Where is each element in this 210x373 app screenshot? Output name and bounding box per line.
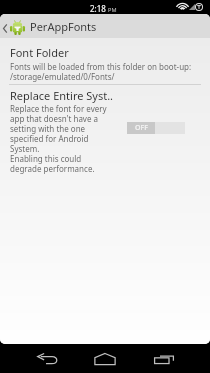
staticText: PM [108,6,117,14]
button[interactable]: Recent apps [134,344,194,373]
button[interactable]: Font Folder [0,38,210,84]
staticText: Fonts will be loaded from this folder on… [10,61,192,82]
staticText: PerAppFonts [30,19,97,34]
button[interactable]: Back [17,344,77,373]
button[interactable]: Navigate up [0,14,210,38]
button[interactable]: Home [75,344,135,373]
button[interactable]: Toggle off [127,122,185,134]
staticText: Replace Entire Syst.. [10,88,114,103]
staticText: Font Folder [10,45,69,60]
staticText: OFF [135,123,148,133]
button[interactable]: Replace Entire Syst.. [0,85,210,175]
staticText: 2:18 [90,3,106,14]
staticText: Replace the font for every app that does… [10,103,110,174]
